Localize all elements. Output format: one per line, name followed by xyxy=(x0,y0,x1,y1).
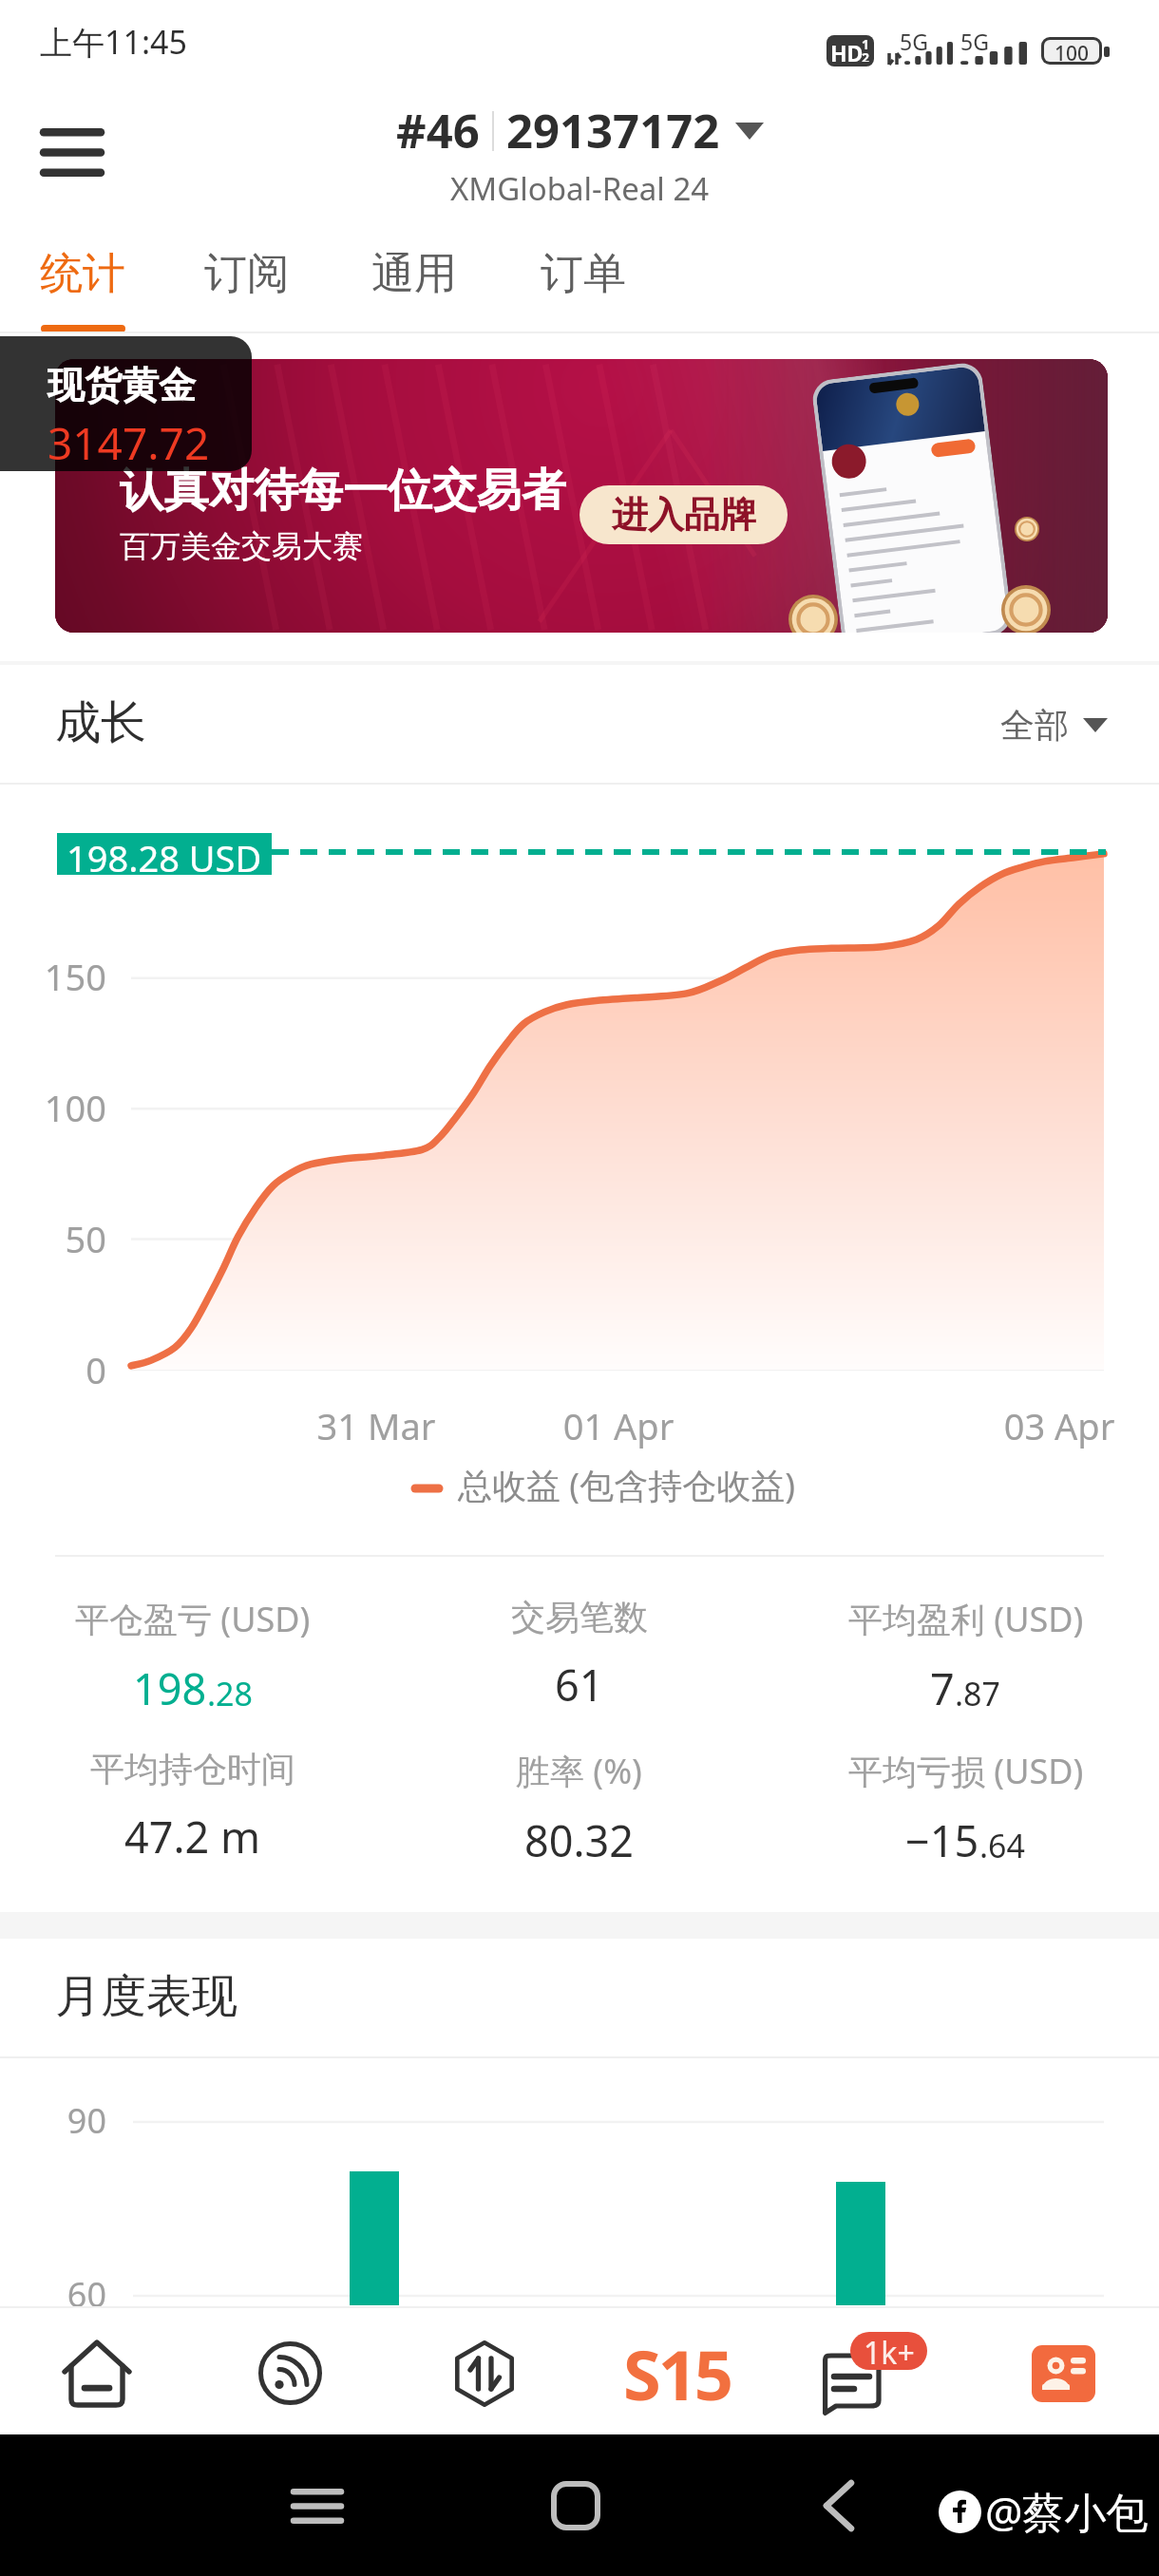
staticText: 60 xyxy=(0,2271,106,2318)
staticText: 198 xyxy=(133,1659,207,1717)
staticText: 7 xyxy=(930,1659,955,1717)
staticText: S15 xyxy=(623,2327,731,2420)
staticText: #46 xyxy=(396,99,480,162)
staticText: 90 xyxy=(0,2097,106,2144)
staticText: 平均亏损 (USD) xyxy=(848,1748,1084,1794)
staticText: 1k+ xyxy=(864,2332,915,2370)
staticText: 50 xyxy=(0,1214,106,1263)
button[interactable]: Signals xyxy=(223,2312,356,2434)
button[interactable]: Menu xyxy=(19,100,125,204)
staticText: 150 xyxy=(0,952,106,1001)
button[interactable]: 订单 xyxy=(515,228,652,333)
staticText: 2 xyxy=(862,48,870,62)
button[interactable]: Trade xyxy=(418,2312,551,2434)
staticText: 平均持仓时间 xyxy=(90,1748,295,1790)
button[interactable]: Messages xyxy=(808,2312,941,2434)
staticText: 胜率 (%) xyxy=(516,1748,642,1794)
staticText: 成长 xyxy=(55,694,146,751)
staticText: @蔡小包 xyxy=(985,2483,1149,2540)
button[interactable]: S15 xyxy=(611,2312,744,2434)
staticText: XMGlobal-Real 24 xyxy=(450,167,710,210)
staticText: 5G xyxy=(900,27,928,56)
staticText: 通用 xyxy=(371,247,457,301)
staticText: 100 xyxy=(1054,40,1090,62)
staticText: 认真对待每一位交易者 xyxy=(120,463,566,519)
staticText: 3147.72 xyxy=(47,413,210,471)
button[interactable]: 现货黄金 xyxy=(0,336,252,471)
staticText: .87 xyxy=(955,1672,1001,1715)
staticText: .64 xyxy=(979,1824,1026,1867)
staticText: 0 xyxy=(0,1345,106,1394)
staticText: 月度表现 xyxy=(55,1968,237,2025)
button[interactable]: 全部 xyxy=(1000,704,1108,747)
staticText: 31 Mar xyxy=(272,1401,481,1450)
button[interactable]: Recents xyxy=(270,2458,365,2553)
staticText: 平均盈利 (USD) xyxy=(848,1596,1084,1642)
staticText: 百万美金交易大赛 xyxy=(120,527,363,565)
staticText: 平仓盈亏 (USD) xyxy=(75,1596,311,1642)
staticText: 统计 xyxy=(40,247,125,301)
staticText: 61 xyxy=(555,1656,604,1714)
staticText: 总收益 (包含持仓收益) xyxy=(458,1462,795,1508)
staticText: −15 xyxy=(905,1811,979,1869)
staticText: 交易笔数 xyxy=(511,1596,648,1638)
staticText: 29137172 xyxy=(506,99,720,162)
staticText: 现货黄金 xyxy=(47,362,196,408)
staticText: 1 xyxy=(862,35,870,53)
staticText: 47.2 m xyxy=(124,1808,261,1866)
staticText: 03 Apr xyxy=(955,1401,1159,1450)
button[interactable]: 通用 xyxy=(346,228,483,333)
staticText: 订阅 xyxy=(204,247,290,301)
button[interactable]: Back xyxy=(791,2458,886,2553)
staticText: 订单 xyxy=(541,247,626,301)
staticText: 上午11:45 xyxy=(40,20,187,64)
staticText: 进入品牌 xyxy=(612,492,756,538)
button[interactable]: 订阅 xyxy=(179,228,315,333)
button[interactable]: 认真对待每一位交易者 xyxy=(55,359,1108,633)
staticText: 全部 xyxy=(1000,704,1069,747)
staticText: HD xyxy=(830,38,864,66)
staticText: 01 Apr xyxy=(514,1401,723,1450)
staticText: .28 xyxy=(207,1672,254,1715)
staticText: 198.28 USD xyxy=(66,833,262,875)
staticText: 5G xyxy=(960,27,989,56)
staticText: 80.32 xyxy=(524,1811,635,1869)
button[interactable]: Home xyxy=(528,2458,623,2553)
button[interactable]: Home xyxy=(30,2312,163,2434)
button[interactable]: Profile xyxy=(997,2312,1130,2434)
staticText: 100 xyxy=(0,1083,106,1132)
button[interactable]: #46 xyxy=(396,99,764,210)
button[interactable]: 统计 xyxy=(14,228,151,333)
